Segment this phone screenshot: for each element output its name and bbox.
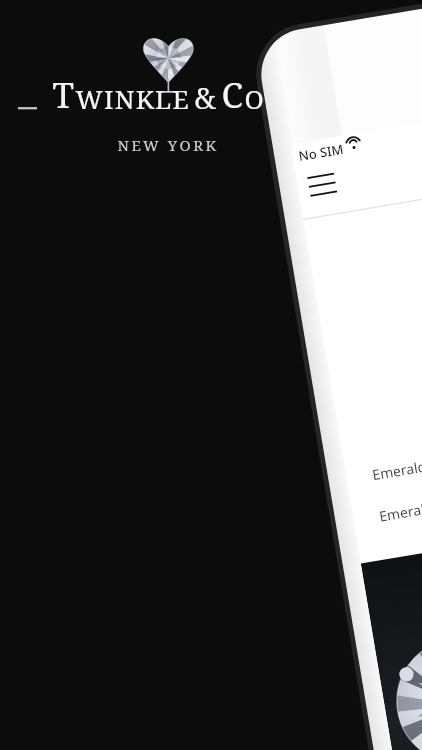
button[interactable]: Twinkle & Co. New York xyxy=(0,0,422,750)
